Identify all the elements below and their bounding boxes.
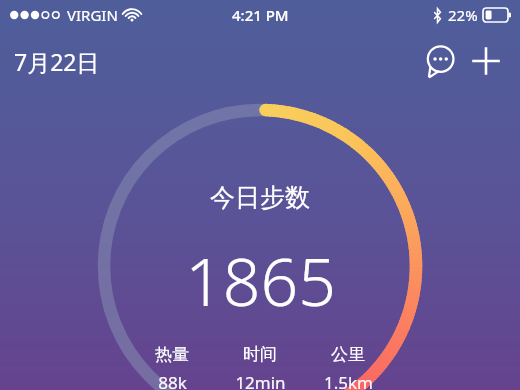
staticText: 1865 [185, 235, 336, 325]
button[interactable]: Add [466, 41, 506, 81]
button[interactable]: Messages [420, 41, 460, 81]
staticText: 时间 [243, 344, 277, 365]
button[interactable]: 热量 [141, 344, 203, 390]
staticText: 今日步数 [210, 182, 310, 213]
staticText: 1.5km [324, 371, 373, 390]
staticText: 88k [158, 371, 187, 390]
staticText: VIRGIN [67, 5, 118, 25]
staticText: 22% [448, 5, 478, 25]
button[interactable]: 公里 [317, 344, 379, 390]
button[interactable]: 时间 [229, 344, 291, 390]
staticText: 12min [235, 371, 286, 390]
staticText: 4:21 PM [232, 5, 289, 25]
staticText: 热量 [155, 344, 189, 365]
staticText: 公里 [331, 344, 365, 365]
button[interactable]: 7月22日 [14, 46, 100, 77]
